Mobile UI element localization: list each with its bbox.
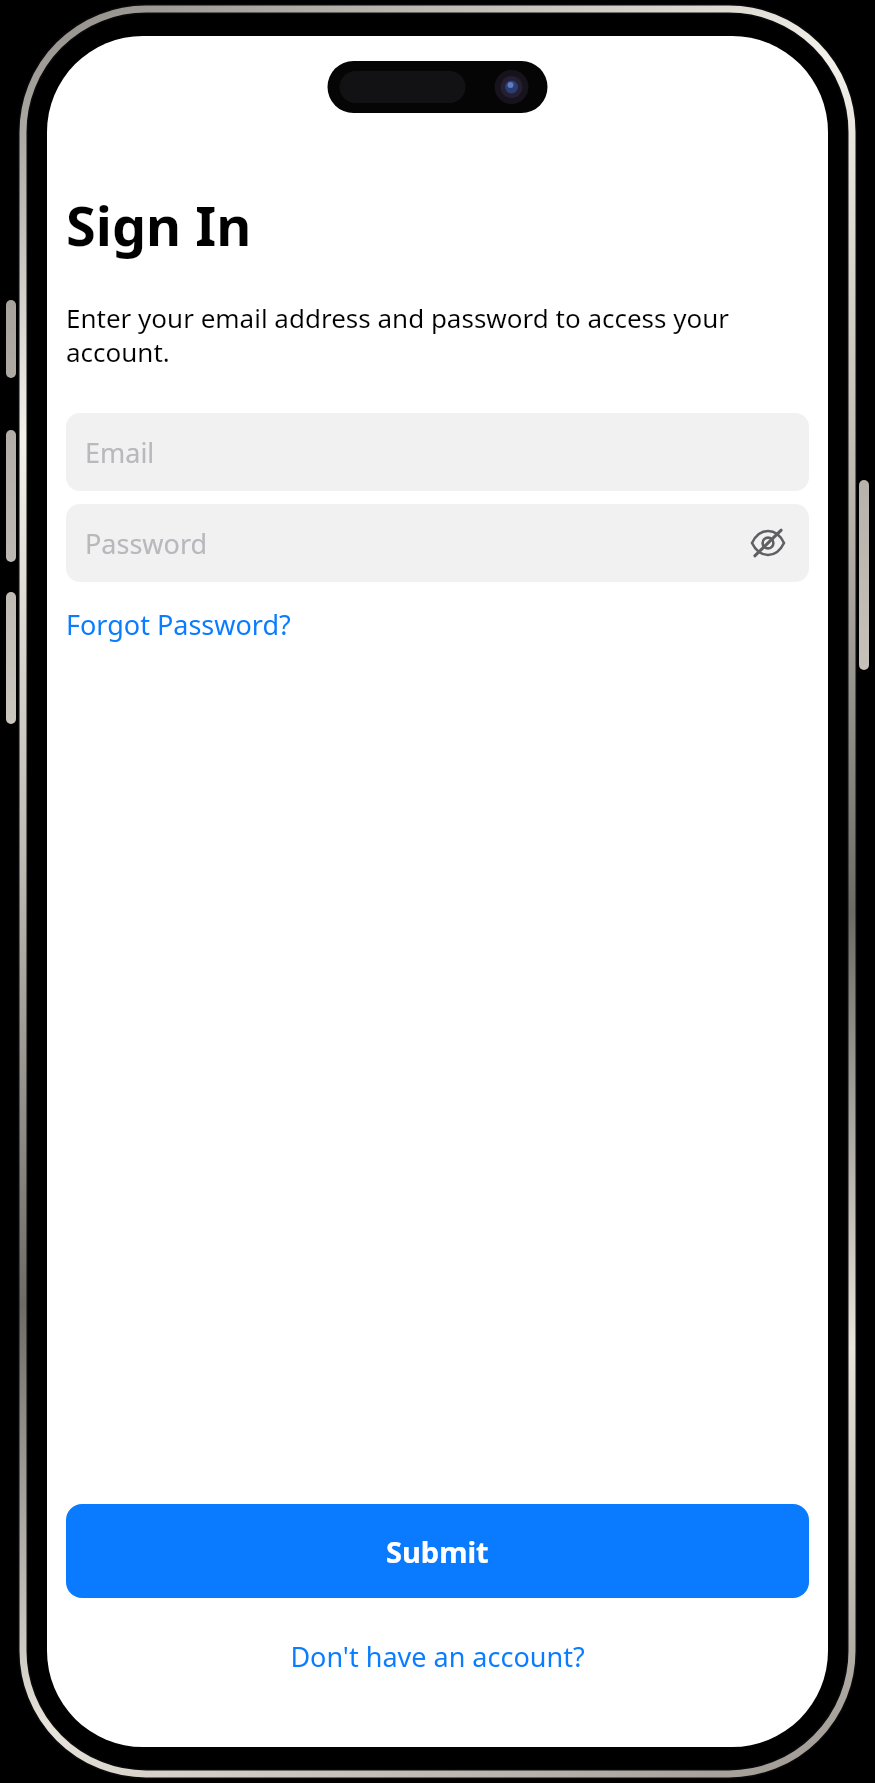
- staticText: Submit: [386, 1532, 489, 1571]
- staticText: Forgot Password?: [66, 606, 291, 643]
- staticText: Email: [85, 434, 155, 471]
- staticText: Don't have an account?: [290, 1638, 585, 1675]
- button[interactable]: Don't have an account?: [47, 1632, 828, 1681]
- button[interactable]: Show password: [746, 521, 790, 565]
- button[interactable]: Email: [66, 413, 809, 491]
- button[interactable]: Forgot Password?: [66, 602, 291, 647]
- staticText: Enter your email address and password to…: [66, 300, 816, 369]
- button[interactable]: Submit: [66, 1504, 809, 1598]
- staticText: Password: [85, 525, 746, 562]
- button[interactable]: Password: [66, 504, 809, 582]
- staticText: Sign In: [66, 188, 252, 262]
